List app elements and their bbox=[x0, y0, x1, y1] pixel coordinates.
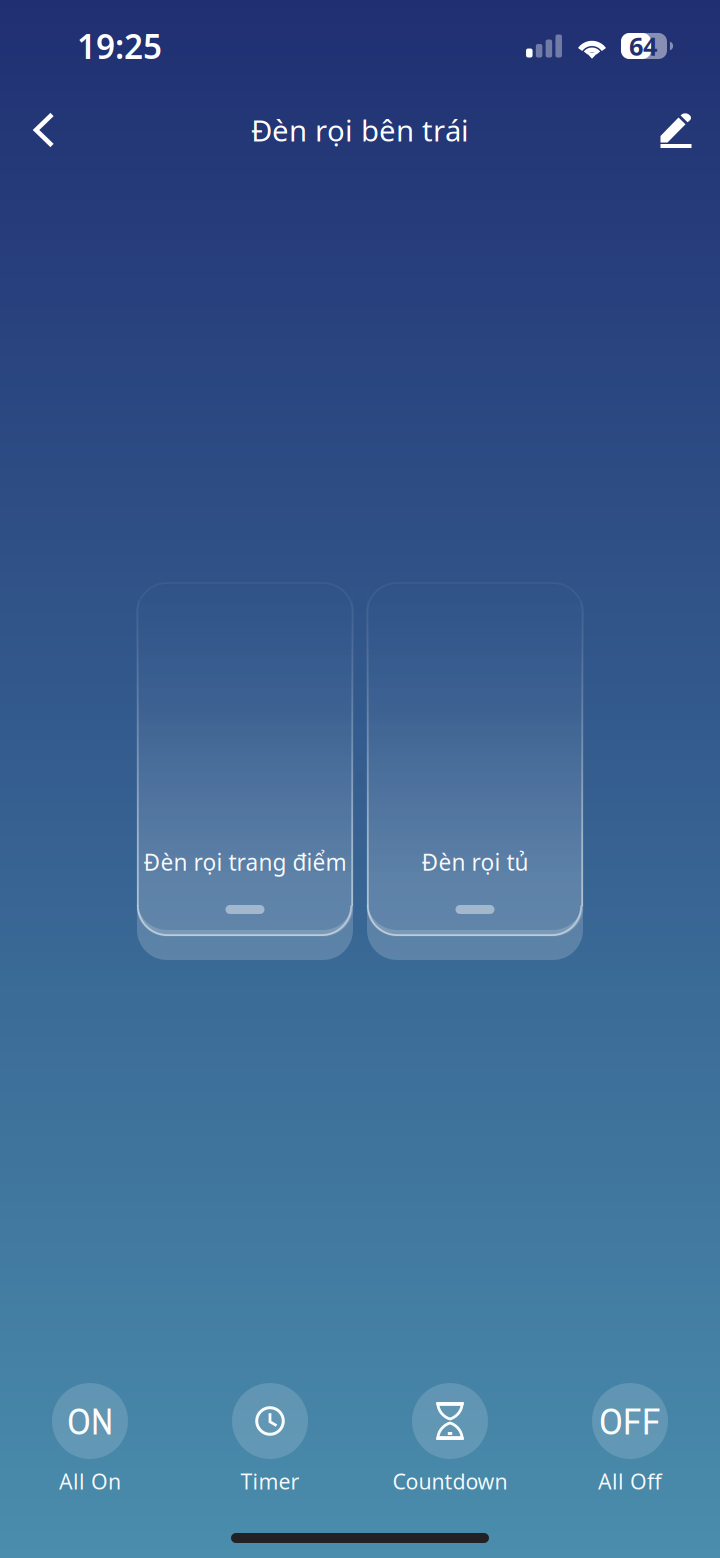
button[interactable]: Đèn rọi tủ bbox=[367, 583, 583, 960]
staticText: 64 bbox=[629, 29, 657, 63]
staticText: Đèn rọi trang điểm bbox=[143, 847, 346, 877]
staticText: Đèn rọi tủ bbox=[421, 847, 528, 877]
button[interactable]: Countdown bbox=[360, 1383, 540, 1498]
staticText: Countdown bbox=[392, 1467, 507, 1495]
staticText: OFF bbox=[599, 1396, 661, 1446]
button[interactable]: Edit bbox=[640, 94, 712, 166]
button[interactable]: OFF bbox=[540, 1383, 720, 1498]
button[interactable]: Timer bbox=[180, 1383, 360, 1498]
staticText: All Off bbox=[598, 1467, 662, 1495]
button[interactable]: Back bbox=[8, 94, 80, 166]
button[interactable]: ON bbox=[0, 1383, 180, 1498]
button[interactable]: Đèn rọi trang điểm bbox=[137, 583, 353, 960]
staticText: All On bbox=[59, 1467, 121, 1495]
staticText: Đèn rọi bên trái bbox=[251, 110, 469, 149]
staticText: 19:25 bbox=[77, 24, 162, 68]
staticText: ON bbox=[67, 1396, 113, 1446]
staticText: Timer bbox=[240, 1467, 299, 1495]
